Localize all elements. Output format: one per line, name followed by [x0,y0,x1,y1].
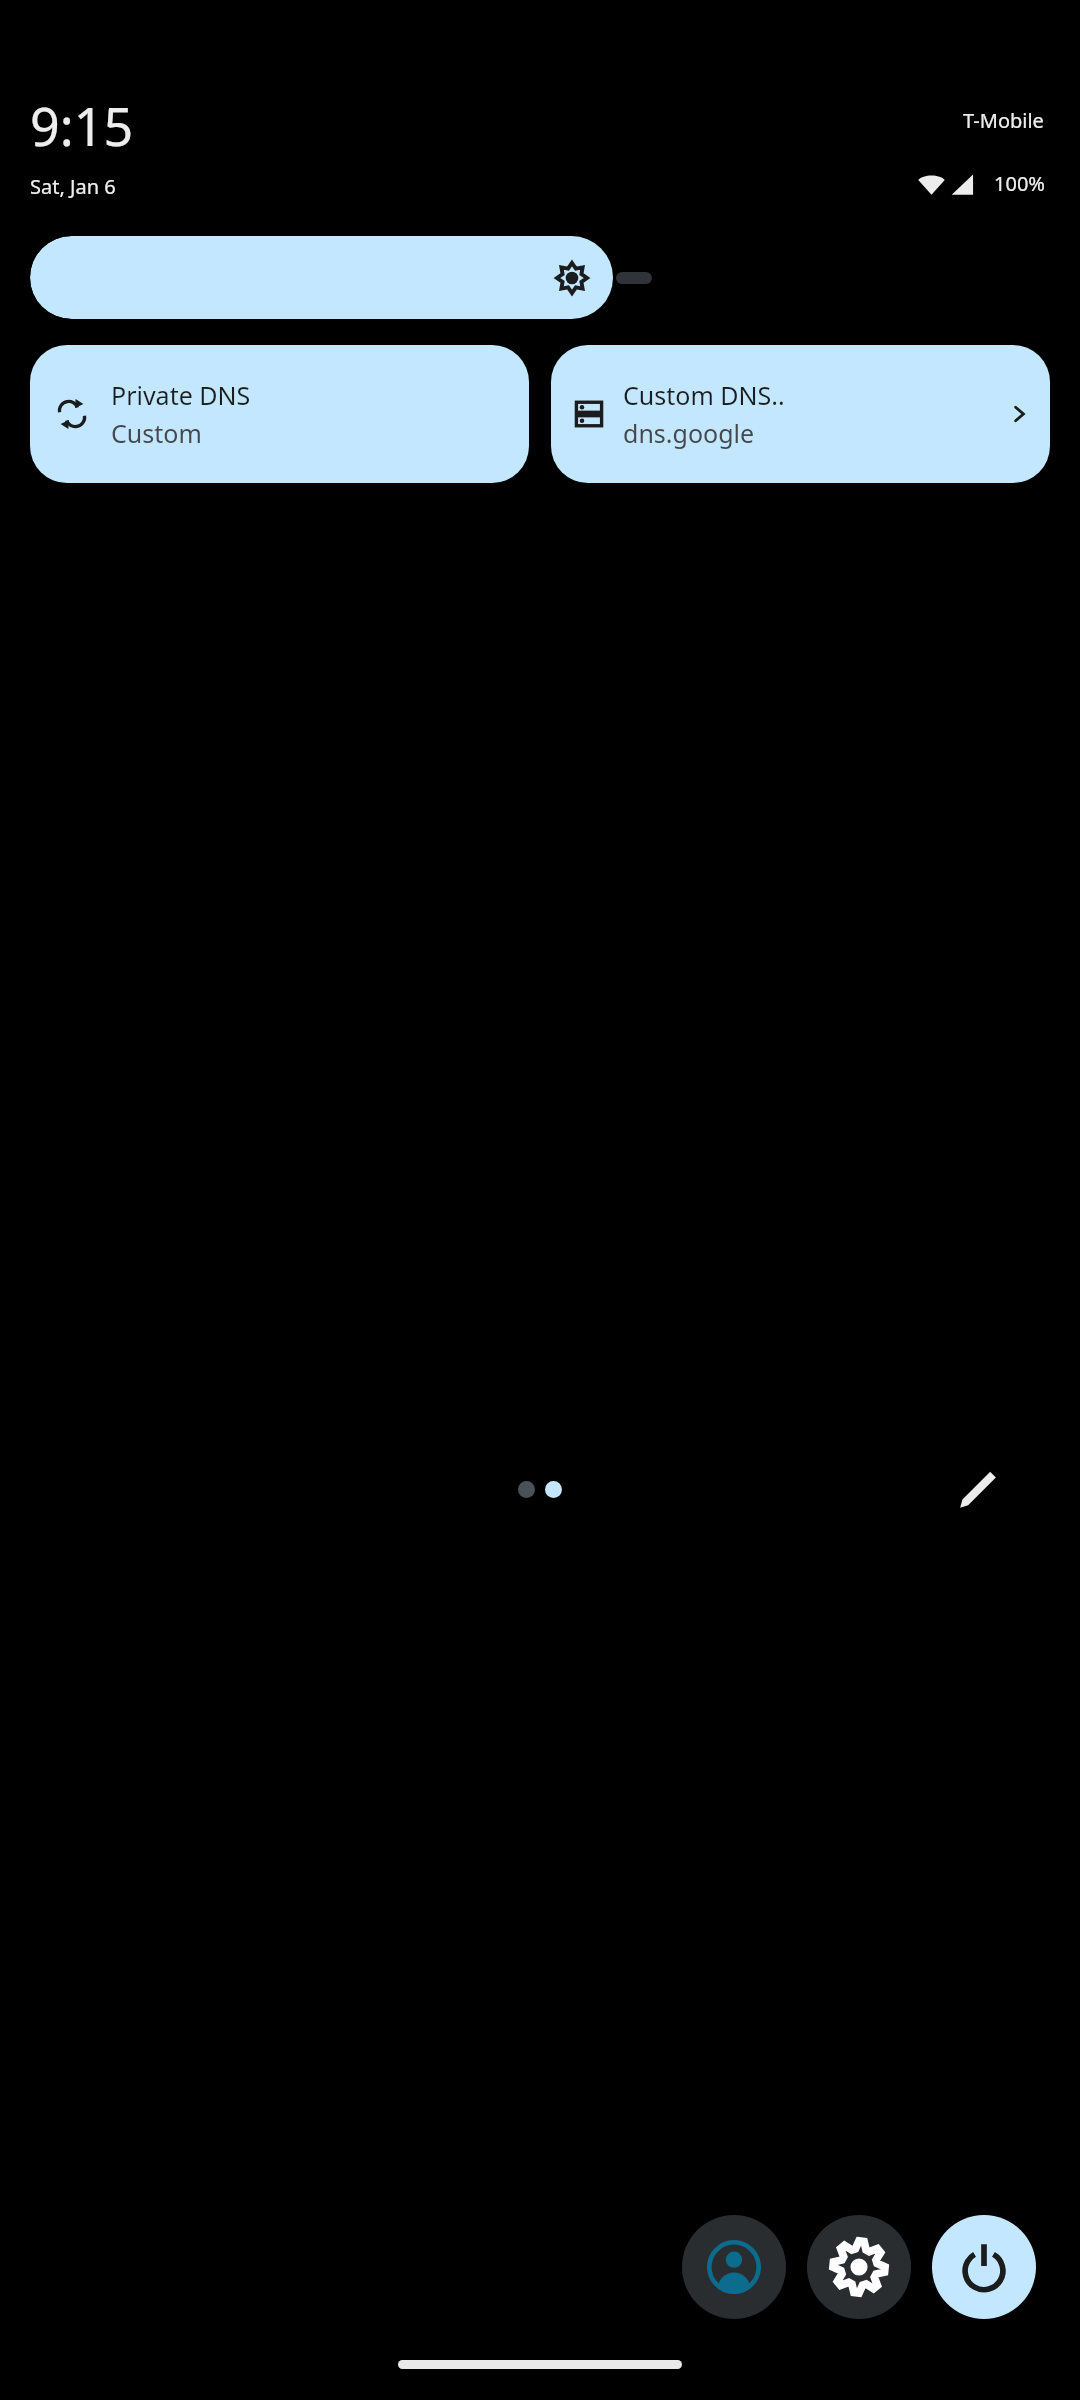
button[interactable]: Private DNS [30,345,529,483]
button[interactable]: User account [682,2215,786,2319]
staticText: Custom DNS.. [623,378,785,412]
staticText: dns.google [623,416,755,450]
staticText: Private DNS [111,378,251,412]
button[interactable]: Settings [807,2215,911,2319]
staticText: 100% [994,170,1045,197]
staticText: Sat, Jan 6 [30,173,116,200]
staticText: T-Mobile [963,107,1044,134]
button[interactable]: Brightness [30,236,652,319]
button[interactable]: Custom DNS.. [551,345,1050,483]
staticText: 9:15 [30,90,134,161]
button[interactable]: Power [932,2215,1036,2319]
staticText: Custom [111,416,202,450]
button[interactable]: Edit tiles [940,1452,1016,1528]
